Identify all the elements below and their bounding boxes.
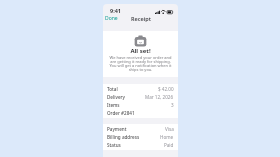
staticText: Visa bbox=[165, 126, 174, 132]
staticText: We have received your order and are gett… bbox=[107, 55, 174, 72]
button[interactable]: Billing address bbox=[103, 133, 178, 141]
staticText: Receipt bbox=[131, 15, 151, 22]
staticText: Total bbox=[107, 86, 118, 92]
button[interactable]: Payment bbox=[103, 125, 178, 133]
staticText: Status bbox=[107, 142, 121, 148]
staticText: Payment bbox=[107, 126, 127, 132]
staticText: 3 bbox=[171, 102, 174, 108]
staticText: All set! bbox=[130, 47, 151, 55]
staticText: Home bbox=[160, 134, 174, 140]
staticText: Done bbox=[105, 15, 118, 22]
staticText: Order #2841 bbox=[107, 110, 135, 116]
staticText: Items bbox=[107, 102, 120, 108]
button[interactable]: Done bbox=[103, 14, 120, 23]
staticText: 9:41 bbox=[110, 7, 121, 14]
staticText: Billing address bbox=[107, 134, 140, 140]
button[interactable]: Status bbox=[103, 141, 178, 149]
staticText: Mar 12, 2026 bbox=[145, 94, 174, 100]
staticText: Delivery bbox=[107, 94, 125, 100]
button[interactable]: Total bbox=[103, 85, 178, 93]
staticText: Paid bbox=[164, 142, 174, 148]
button[interactable]: Items bbox=[103, 101, 178, 109]
staticText: $ 42.00 bbox=[158, 86, 174, 92]
button[interactable]: Order #2841 bbox=[103, 109, 178, 117]
button[interactable]: Delivery bbox=[103, 93, 178, 101]
